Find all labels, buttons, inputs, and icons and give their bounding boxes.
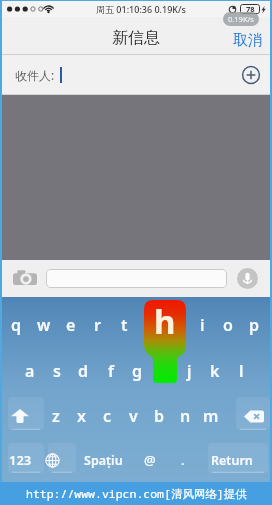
button[interactable]: Backspace: [226, 399, 270, 433]
button[interactable]: t: [111, 308, 137, 342]
button[interactable]: @: [140, 443, 170, 477]
staticText: @: [144, 451, 156, 469]
button[interactable]: s: [43, 354, 70, 388]
staticText: u: [171, 314, 182, 336]
button[interactable]: Change keyboard language: [42, 443, 68, 477]
button[interactable]: i: [189, 308, 215, 342]
button[interactable]: Camera: [13, 269, 37, 288]
button[interactable]: u: [163, 308, 189, 342]
button[interactable]: r: [84, 308, 111, 342]
staticText: h: [158, 360, 169, 382]
staticText: m: [203, 405, 219, 427]
staticText: k: [210, 360, 220, 382]
button[interactable]: g: [124, 354, 150, 388]
staticText: w: [37, 314, 51, 336]
button[interactable]: l: [228, 354, 254, 388]
staticText: 123: [9, 451, 32, 469]
staticText: Return: [211, 452, 253, 469]
staticText: 78: [246, 4, 255, 14]
button[interactable]: j: [176, 354, 202, 388]
button[interactable]: b: [146, 399, 172, 433]
button[interactable]: Return: [200, 443, 270, 477]
button[interactable]: c: [94, 399, 120, 433]
staticText: y: [146, 314, 155, 336]
staticText: 0.19K/s: [228, 14, 254, 24]
staticText: 新信息: [112, 28, 160, 48]
staticText: o: [223, 314, 233, 336]
staticText: s: [53, 360, 61, 382]
staticText: e: [66, 314, 76, 336]
button[interactable]: h: [150, 354, 176, 388]
button[interactable]: e: [57, 308, 84, 342]
staticText: 收件人:: [15, 67, 55, 83]
staticText: c: [103, 405, 112, 427]
staticText: .: [181, 451, 185, 469]
staticText: Spațiu: [84, 452, 123, 469]
staticText: q: [11, 314, 22, 336]
button[interactable]: .: [170, 443, 200, 477]
button[interactable]: v: [120, 399, 146, 433]
button[interactable]: 取消: [225, 29, 270, 52]
button[interactable]: o: [215, 308, 241, 342]
button[interactable]: Voice input: [237, 268, 258, 289]
staticText: a: [25, 360, 35, 382]
staticText: 周五 01:10:36 0.19K/s: [96, 3, 186, 15]
staticText: v: [129, 405, 138, 427]
button[interactable]: k: [202, 354, 228, 388]
staticText: z: [52, 405, 60, 427]
staticText: b: [154, 405, 165, 427]
staticText: t: [121, 314, 128, 336]
button[interactable]: Shift: [2, 399, 42, 433]
staticText: f: [108, 360, 114, 382]
button[interactable]: a: [16, 354, 43, 388]
staticText: d: [78, 360, 89, 382]
button[interactable]: f: [97, 354, 124, 388]
staticText: n: [180, 405, 191, 427]
staticText: h: [154, 299, 176, 344]
staticText: http://www.vipcn.com[清风网络]提供: [26, 486, 247, 502]
button[interactable]: p: [241, 308, 267, 342]
button[interactable]: [46, 269, 227, 288]
button[interactable]: w: [30, 308, 57, 342]
staticText: j: [187, 360, 192, 382]
staticText: p: [249, 314, 260, 336]
button[interactable]: 123: [2, 443, 42, 477]
staticText: x: [77, 405, 86, 427]
button[interactable]: Add recipient: [241, 65, 261, 85]
staticText: g: [132, 360, 143, 382]
button[interactable]: q: [3, 308, 30, 342]
staticText: l: [239, 360, 244, 382]
button[interactable]: x: [68, 399, 94, 433]
button[interactable]: z: [43, 399, 68, 433]
button[interactable]: d: [70, 354, 97, 388]
button[interactable]: y: [137, 308, 163, 342]
button[interactable]: n: [172, 399, 198, 433]
button[interactable]: m: [198, 399, 224, 433]
staticText: i: [200, 314, 205, 336]
staticText: 取消: [233, 31, 263, 50]
staticText: r: [94, 314, 101, 336]
button[interactable]: Spațiu: [68, 443, 140, 477]
